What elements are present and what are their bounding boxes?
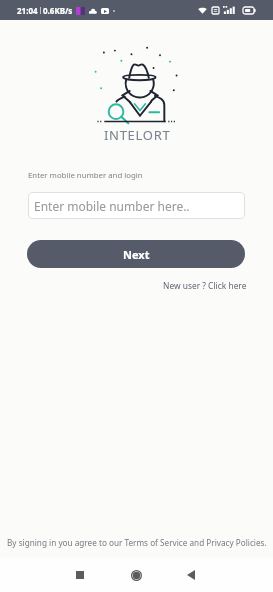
staticText: By signing in you agree to our Terms of …	[7, 537, 267, 548]
button[interactable]: Back	[173, 558, 208, 592]
button[interactable]: New user ? Click here	[163, 280, 247, 291]
staticText: Enter mobile number and login	[28, 170, 143, 181]
button[interactable]: Home	[119, 558, 154, 592]
button[interactable]: Enter mobile number here..	[28, 192, 245, 219]
staticText: Next	[123, 247, 150, 262]
staticText: INTELORT	[104, 126, 171, 144]
staticText: 21:04	[17, 5, 38, 16]
button[interactable]: Next	[27, 240, 245, 268]
staticText: New user ? Click here	[163, 280, 247, 291]
button[interactable]: Recent apps	[62, 558, 97, 592]
staticText: 0.6KB/s	[43, 5, 73, 16]
staticText: Enter mobile number here..	[34, 198, 190, 214]
